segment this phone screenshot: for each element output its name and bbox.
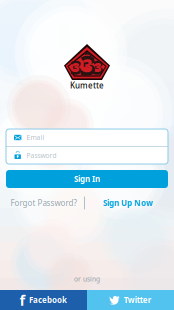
staticText: 3 [82,54,92,77]
staticText: 3 [72,59,79,75]
button[interactable]: Email [6,129,168,146]
staticText: Sign In [74,174,100,184]
button[interactable]: Sign In [6,170,168,188]
button[interactable]: Forgot Password? [3,196,84,210]
staticText: Sign Up Now [103,198,153,208]
staticText: 3 [92,54,104,80]
staticText: Forgot Password? [10,198,76,208]
staticText: Kumette [70,80,104,91]
staticText: 3 [79,46,95,84]
button[interactable]: f [0,290,87,310]
button[interactable]: Password [6,147,168,164]
staticText: Password [26,151,56,160]
staticText: 3 [94,59,101,75]
staticText: Email [26,133,44,142]
staticText: f [19,290,25,310]
staticText: or using [74,275,100,283]
staticText: Facebook [29,295,67,305]
button[interactable]: Sign Up Now [85,196,171,210]
staticText: 3 [83,46,92,68]
staticText: Twitter [124,295,152,305]
staticText: 3 [70,54,82,80]
staticText: 3 [85,51,90,63]
button[interactable]: Twitter [87,290,174,310]
